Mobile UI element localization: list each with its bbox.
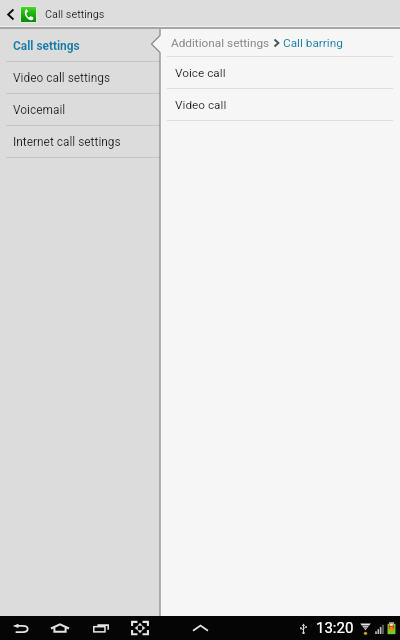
staticText: Call settings [45, 8, 105, 21]
button[interactable]: Navigate up [0, 0, 20, 29]
button[interactable]: Internet call settings [0, 126, 160, 158]
button[interactable]: Voice call [160, 57, 400, 89]
staticText: Video call settings [13, 71, 111, 85]
staticText: Internet call settings [13, 135, 121, 149]
button[interactable]: Additional settings [171, 36, 270, 50]
staticText: Voice call [175, 66, 226, 80]
button[interactable]: Call barring [283, 36, 343, 50]
button[interactable]: Back [12, 622, 30, 635]
button[interactable]: Screen capture [131, 621, 149, 635]
button[interactable]: Home [50, 622, 70, 634]
button[interactable]: Recent apps [92, 622, 110, 635]
staticText: Voicemail [13, 103, 66, 117]
staticText: Video call [175, 98, 227, 112]
button[interactable]: Call settings [0, 30, 160, 62]
button[interactable]: Voicemail [0, 94, 160, 126]
staticText: Call settings [13, 39, 80, 53]
button[interactable]: Phone app [20, 6, 37, 23]
button[interactable]: Show notifications [192, 623, 209, 633]
button[interactable]: Video call [160, 89, 400, 121]
staticText: 13:20 [316, 619, 354, 637]
button[interactable]: Video call settings [0, 62, 160, 94]
